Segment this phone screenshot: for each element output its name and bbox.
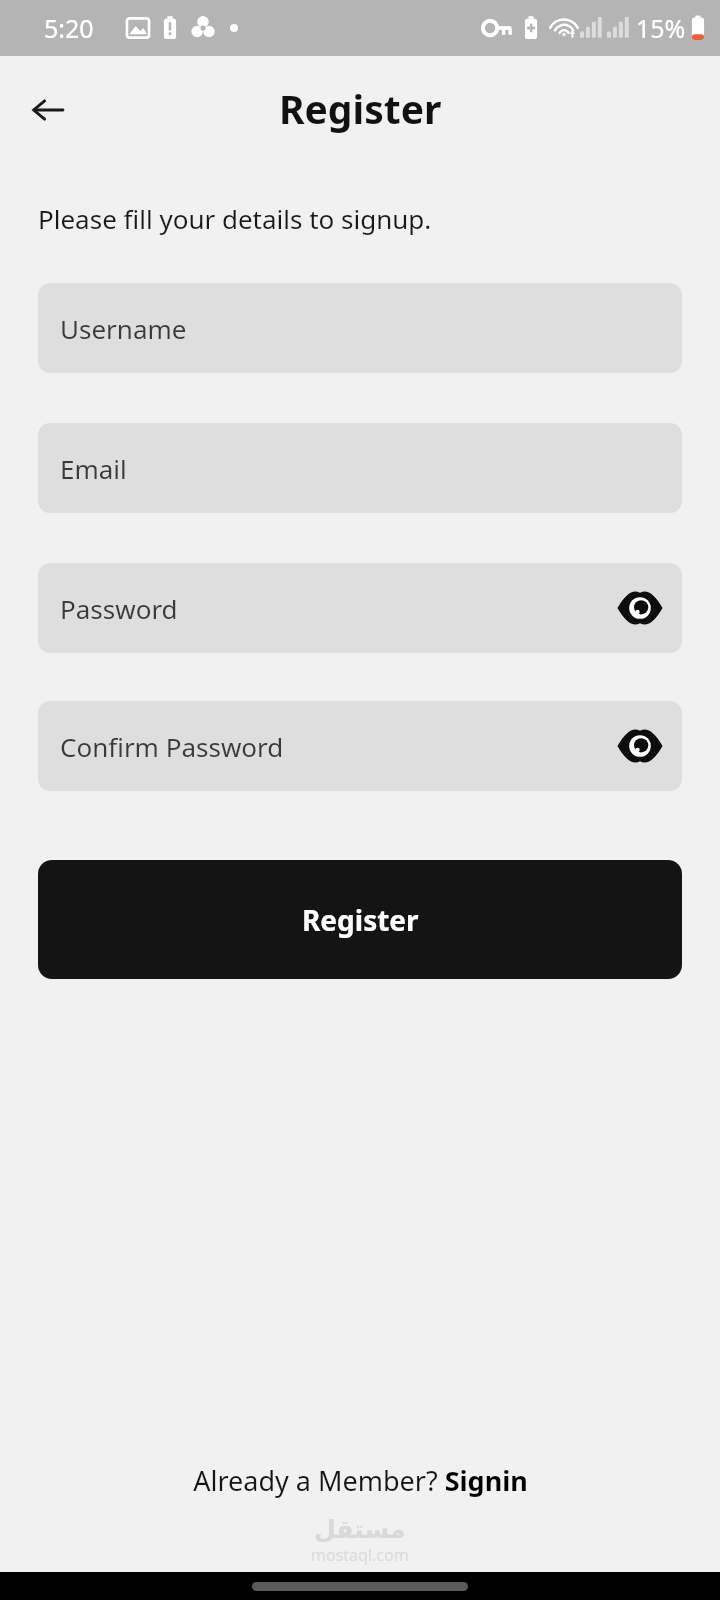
button[interactable]: Email bbox=[38, 423, 682, 513]
staticText: Register bbox=[302, 901, 419, 939]
button[interactable]: Back bbox=[20, 82, 76, 138]
staticText: Confirm Password bbox=[60, 729, 284, 764]
staticText: Email bbox=[60, 451, 127, 486]
button[interactable]: Register bbox=[38, 860, 682, 979]
button[interactable]: Password bbox=[38, 563, 682, 653]
staticText: Please fill your details to signup. bbox=[38, 201, 432, 236]
button[interactable]: Show password bbox=[610, 716, 670, 776]
staticText: Already a Member? Signin bbox=[193, 1462, 528, 1499]
staticText: Username bbox=[60, 311, 187, 346]
button[interactable]: Already a Member? Signin bbox=[0, 1462, 720, 1499]
staticText: 5:20 bbox=[44, 11, 94, 45]
staticText: Register bbox=[279, 82, 442, 135]
staticText: mostaql.com bbox=[311, 1544, 409, 1566]
button[interactable]: Username bbox=[38, 283, 682, 373]
staticText: مستقل bbox=[314, 1515, 406, 1544]
button[interactable]: Show password bbox=[610, 578, 670, 638]
button[interactable]: Confirm Password bbox=[38, 701, 682, 791]
staticText: 15% bbox=[636, 11, 686, 45]
staticText: Password bbox=[60, 591, 178, 626]
